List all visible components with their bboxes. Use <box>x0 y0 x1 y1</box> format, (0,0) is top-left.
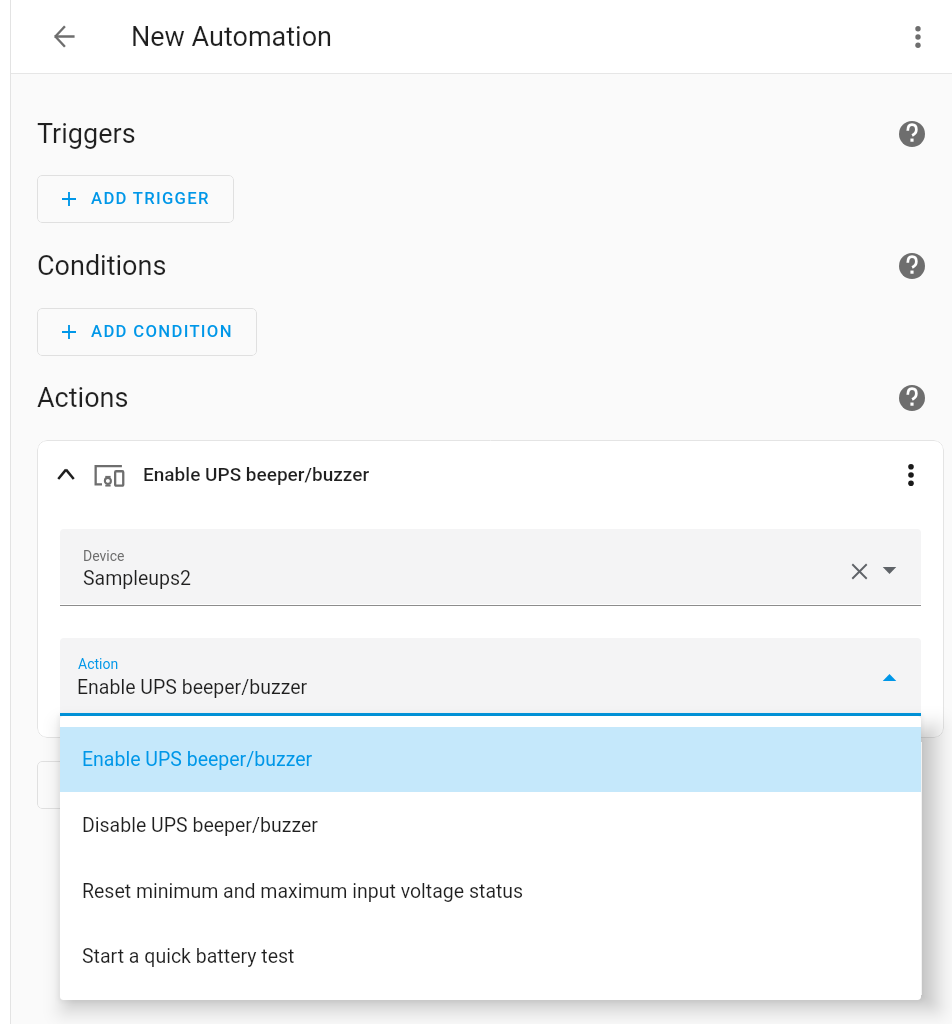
button[interactable]: Help <box>892 378 932 418</box>
button[interactable]: Show device list <box>873 554 905 586</box>
staticText: Start a quick battery test <box>82 945 295 968</box>
staticText: Disable UPS beeper/buzzer <box>82 814 318 837</box>
button[interactable]: Hide action list <box>873 661 905 693</box>
staticText: Actions <box>37 382 129 414</box>
button[interactable]: Clear device <box>839 551 879 591</box>
staticText: Device <box>83 548 125 564</box>
staticText: Conditions <box>37 250 167 282</box>
button[interactable]: Action menu <box>892 456 929 493</box>
staticText: Sampleups2 <box>83 567 192 590</box>
staticText: Enable UPS beeper/buzzer <box>77 676 308 699</box>
staticText: ADD ACTION <box>89 775 199 795</box>
staticText: ADD CONDITION <box>91 322 233 342</box>
button[interactable]: More options <box>893 12 942 61</box>
button[interactable]: Help <box>892 246 932 286</box>
staticText: Action <box>78 656 119 672</box>
button[interactable]: ADD TRIGGER <box>37 175 234 223</box>
staticText: ADD TRIGGER <box>91 189 210 209</box>
button[interactable]: Start a quick battery test <box>60 922 921 987</box>
button[interactable]: Device <box>60 529 921 604</box>
button[interactable]: Disable UPS beeper/buzzer <box>60 792 921 857</box>
staticText: Reset minimum and maximum input voltage … <box>82 880 524 903</box>
button[interactable]: Action <box>60 638 921 713</box>
staticText: Enable UPS beeper/buzzer <box>82 748 313 771</box>
staticText: New Automation <box>131 21 332 53</box>
button[interactable]: Help <box>892 114 932 154</box>
button[interactable]: Navigate back <box>40 12 89 61</box>
button[interactable]: Enable UPS beeper/buzzer <box>60 727 921 792</box>
button[interactable]: Collapse action <box>47 455 84 492</box>
button[interactable]: ADD ACTION <box>37 761 222 809</box>
staticText: Triggers <box>37 118 136 150</box>
button[interactable]: Reset minimum and maximum input voltage … <box>60 857 921 922</box>
staticText: Enable UPS beeper/buzzer <box>143 463 370 485</box>
button[interactable]: ADD CONDITION <box>37 308 257 356</box>
